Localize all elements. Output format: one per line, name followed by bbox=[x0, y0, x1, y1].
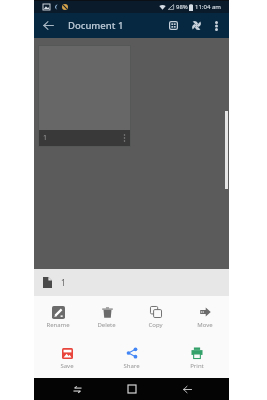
staticText: 98% bbox=[176, 3, 188, 11]
staticText: Document 1 bbox=[68, 19, 124, 32]
staticText: Delete bbox=[97, 321, 116, 329]
button[interactable]: Delete bbox=[82, 296, 131, 337]
staticText: Save bbox=[60, 362, 74, 370]
button[interactable]: Save bbox=[34, 337, 99, 378]
button[interactable]: 1 bbox=[39, 46, 130, 146]
button[interactable]: Rename bbox=[34, 296, 82, 337]
button[interactable]: Enhance bbox=[185, 13, 207, 38]
button[interactable]: Back bbox=[167, 378, 207, 400]
button[interactable]: Grid view bbox=[161, 13, 185, 38]
staticText: Rename bbox=[46, 321, 70, 329]
button[interactable]: Navigate up bbox=[34, 13, 62, 38]
button[interactable]: Home bbox=[112, 378, 152, 400]
staticText: Share bbox=[123, 362, 140, 370]
button[interactable]: Print bbox=[164, 337, 229, 378]
button[interactable]: Move bbox=[180, 296, 229, 337]
button[interactable]: More options bbox=[207, 13, 225, 38]
staticText: 11:04 am bbox=[195, 3, 221, 11]
button[interactable]: Share bbox=[99, 337, 164, 378]
button[interactable]: Copy bbox=[131, 296, 180, 337]
staticText: 1 bbox=[61, 277, 66, 288]
button[interactable]: Recent apps bbox=[57, 378, 97, 400]
staticText: Move bbox=[197, 321, 213, 329]
staticText: Copy bbox=[148, 321, 163, 329]
staticText: 1 bbox=[43, 133, 48, 143]
staticText: Print bbox=[190, 362, 204, 370]
